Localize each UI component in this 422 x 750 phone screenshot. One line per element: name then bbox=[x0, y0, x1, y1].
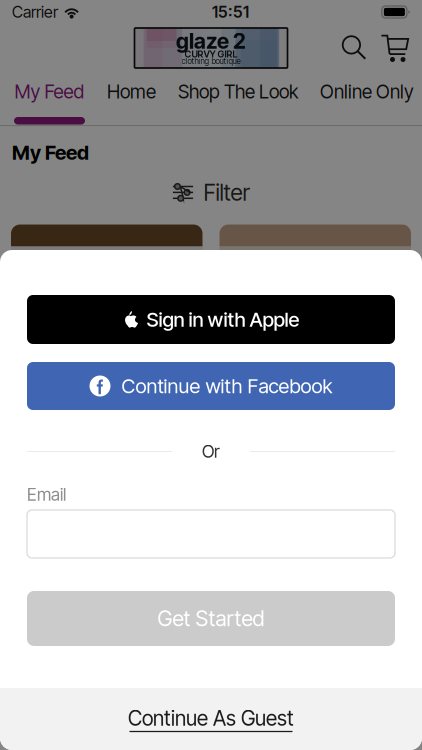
staticText: Carrier bbox=[12, 2, 58, 22]
staticText: CURVY GIRL bbox=[184, 48, 237, 60]
button[interactable]: Search bbox=[337, 30, 372, 65]
staticText: Get Started bbox=[157, 606, 264, 631]
staticText: 15:51 bbox=[212, 2, 249, 22]
staticText: clothing boutique bbox=[181, 56, 240, 66]
staticText: My Feed bbox=[14, 80, 84, 103]
staticText: My Feed bbox=[12, 140, 89, 164]
staticText: Email bbox=[27, 484, 66, 505]
button[interactable]: Shop The Look bbox=[167, 72, 309, 125]
staticText: Home bbox=[107, 80, 156, 103]
button[interactable]: Sign in with Apple bbox=[27, 295, 395, 344]
button[interactable]: Shopping cart bbox=[378, 31, 412, 65]
staticText: Filter bbox=[203, 179, 249, 206]
staticText: glaze 2 bbox=[176, 28, 246, 54]
button[interactable]: Continue with Facebook bbox=[27, 362, 395, 410]
button[interactable]: Home bbox=[96, 72, 167, 125]
button[interactable]: Online Only bbox=[309, 72, 422, 125]
staticText: Or bbox=[202, 441, 220, 462]
staticText: Sign in with Apple bbox=[146, 307, 299, 332]
button[interactable]: My Feed bbox=[3, 72, 96, 125]
button[interactable]: Filter bbox=[172, 178, 249, 206]
staticText: Continue As Guest bbox=[128, 706, 294, 731]
staticText: Online Only bbox=[320, 80, 414, 103]
staticText: Shop The Look bbox=[178, 80, 298, 103]
button[interactable]: Get Started bbox=[27, 591, 395, 646]
button[interactable]: Continue As Guest bbox=[0, 688, 422, 750]
staticText: Continue with Facebook bbox=[121, 374, 332, 398]
